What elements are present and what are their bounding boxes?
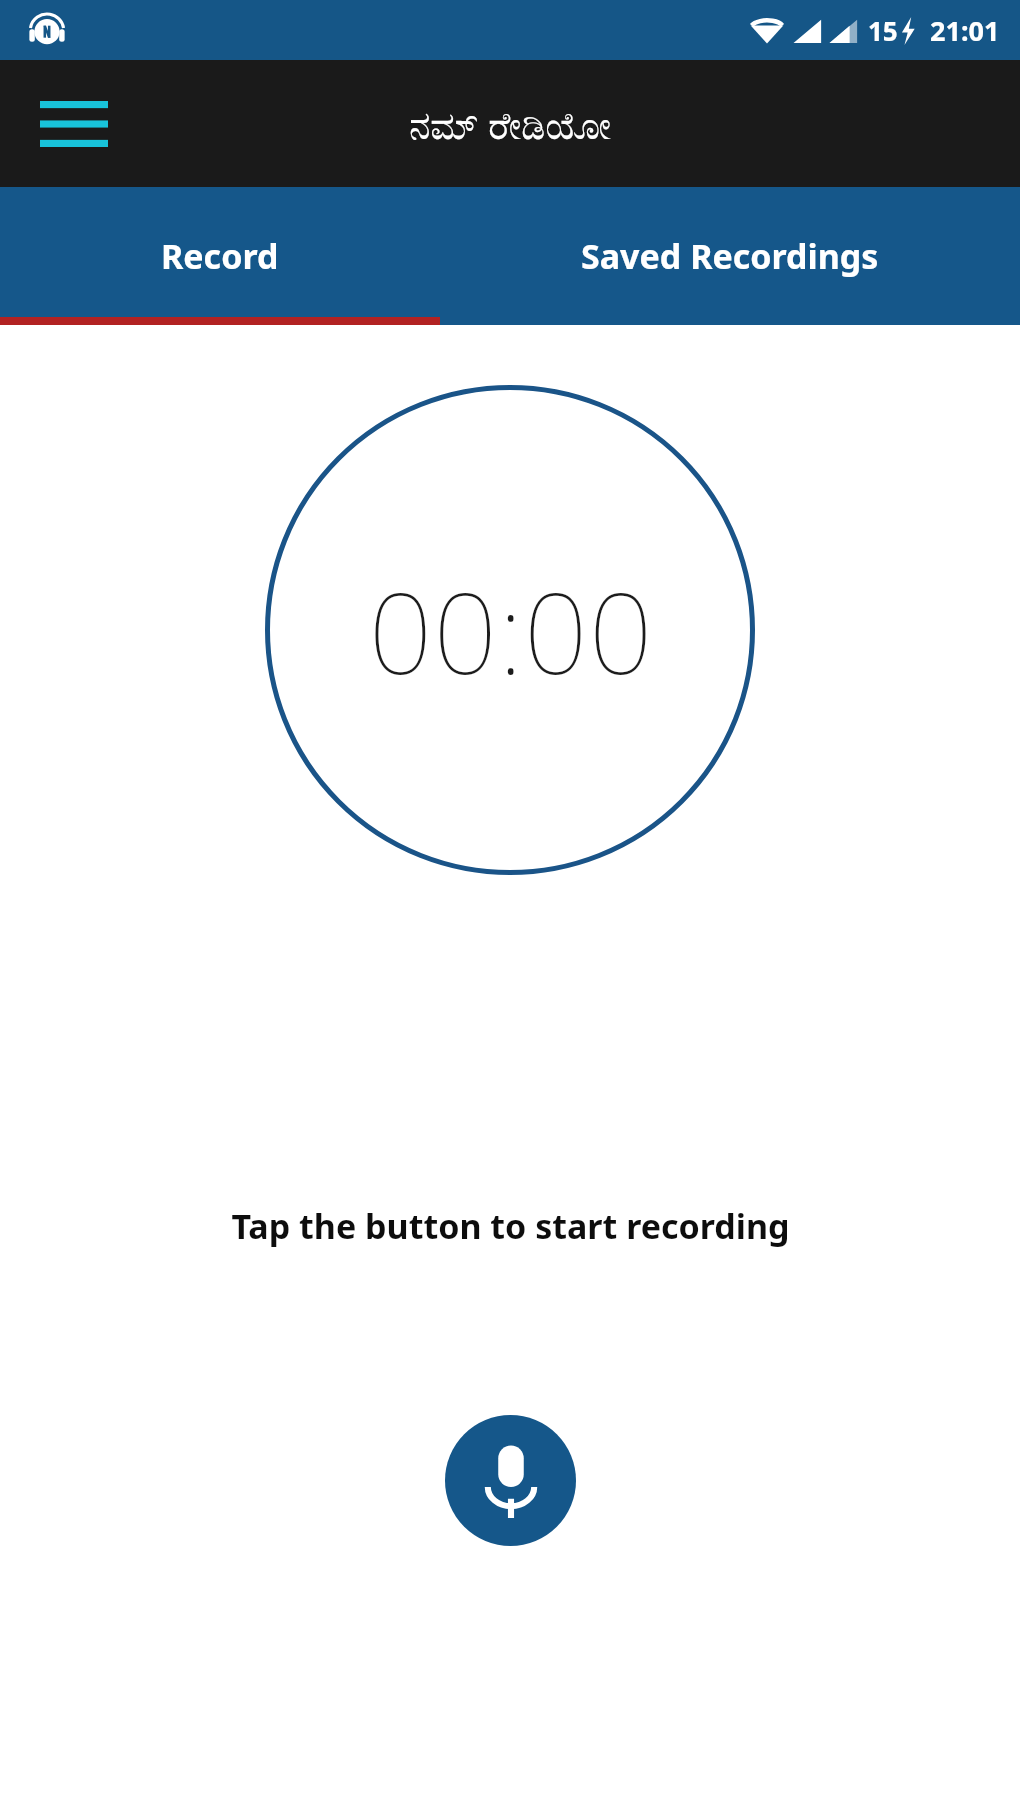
staticText: Tap the button to start recording bbox=[231, 1203, 790, 1249]
button[interactable]: Start recording bbox=[445, 1415, 576, 1546]
staticText: 00:00 bbox=[368, 554, 653, 707]
staticText: ನಮ್ ರೇಡಿಯೋ bbox=[409, 98, 611, 150]
staticText: Record bbox=[161, 233, 279, 279]
button[interactable]: Record bbox=[0, 187, 440, 325]
staticText: 21:01 bbox=[930, 12, 1000, 49]
button[interactable]: Open navigation menu bbox=[36, 86, 112, 162]
button[interactable]: Saved Recordings bbox=[440, 187, 1020, 325]
staticText: 15 bbox=[868, 13, 898, 48]
staticText: Saved Recordings bbox=[581, 233, 879, 279]
